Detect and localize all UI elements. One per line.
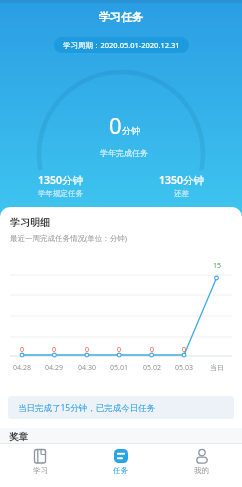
- staticText: 奖章: [9, 431, 28, 443]
- button[interactable]: 我的: [161, 443, 242, 487]
- staticText: 05.03: [175, 363, 193, 373]
- staticText: 05.02: [143, 363, 161, 373]
- staticText: 我的: [194, 466, 209, 475]
- staticText: 学习任务: [99, 10, 143, 24]
- staticText: 0: [109, 110, 122, 140]
- staticText: 04.30: [78, 363, 96, 373]
- staticText: 学习明细: [10, 216, 50, 229]
- staticText: 0: [52, 345, 57, 355]
- button[interactable]: 当日完成了15分钟，已完成今日任务: [8, 396, 234, 419]
- staticText: 05.01: [110, 363, 128, 373]
- staticText: 分钟: [122, 125, 140, 136]
- staticText: 0: [85, 345, 90, 355]
- staticText: 1350分钟: [159, 173, 205, 187]
- staticText: 学年规定任务: [38, 189, 83, 198]
- staticText: 04.29: [45, 363, 63, 373]
- staticText: 0: [20, 345, 25, 355]
- staticText: 15: [213, 261, 222, 271]
- staticText: 还差: [174, 189, 189, 198]
- staticText: 1350分钟: [38, 173, 84, 187]
- staticText: 04.28: [13, 363, 31, 373]
- staticText: 最近一周完成任务情况(单位：分钟): [10, 233, 127, 243]
- button[interactable]: 任务: [80, 443, 161, 487]
- staticText: 学年完成任务: [100, 148, 148, 158]
- button[interactable]: 学习: [0, 443, 80, 487]
- staticText: 0: [182, 345, 187, 355]
- staticText: 当日: [210, 363, 224, 372]
- staticText: 学习: [33, 466, 48, 475]
- staticText: 0: [150, 345, 155, 355]
- staticText: 0: [117, 345, 122, 355]
- staticText: 学习周期：2020.05.01-2020.12.31: [63, 40, 180, 50]
- staticText: 任务: [113, 466, 128, 475]
- staticText: 当日完成了15分钟，已完成今日任务: [18, 402, 156, 414]
